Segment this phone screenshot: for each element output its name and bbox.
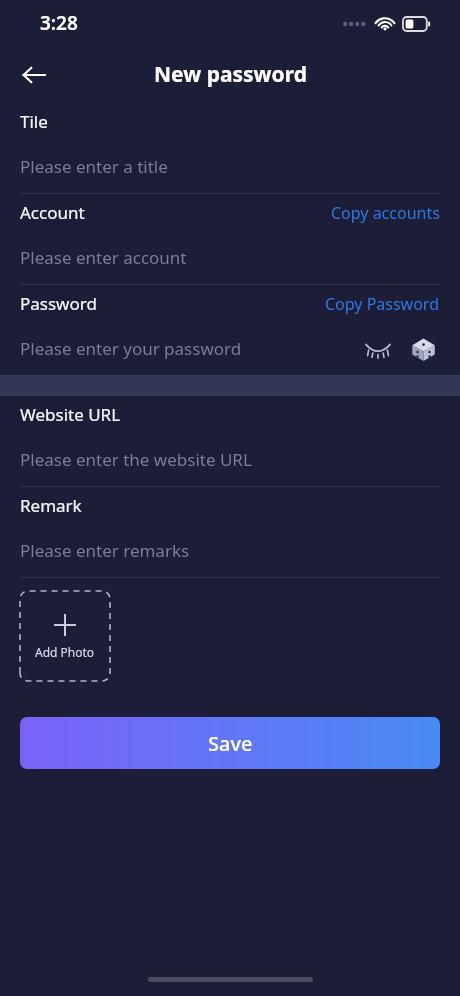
staticText: Copy accounts <box>331 202 440 224</box>
staticText: Please enter a title <box>20 155 168 178</box>
staticText: Tile <box>20 110 48 133</box>
staticText: Please enter your password <box>20 337 242 360</box>
button[interactable]: Copy accounts <box>331 202 440 224</box>
button[interactable]: Show password <box>361 332 395 366</box>
button[interactable]: Save <box>20 717 440 769</box>
staticText: Remark <box>20 494 82 517</box>
button[interactable]: Please enter remarks <box>20 524 440 577</box>
button[interactable]: Back <box>10 51 58 99</box>
button[interactable]: Add Photo <box>20 591 110 681</box>
staticText: Please enter the website URL <box>20 448 252 471</box>
button[interactable]: Generate random password <box>406 332 440 366</box>
button[interactable]: Copy Password <box>325 293 440 315</box>
staticText: Please enter remarks <box>20 539 190 562</box>
button[interactable]: Please enter your password <box>20 322 440 375</box>
staticText: 3:28 <box>40 10 78 36</box>
button[interactable]: Please enter account <box>20 231 440 284</box>
staticText: Copy Password <box>325 293 440 315</box>
button[interactable]: Please enter a title <box>20 140 440 193</box>
staticText: Add Photo <box>35 644 95 660</box>
staticText: Save <box>208 730 253 757</box>
button[interactable]: Please enter the website URL <box>20 433 440 486</box>
staticText: Please enter account <box>20 246 187 269</box>
staticText: Account <box>20 201 85 224</box>
staticText: New password <box>154 60 307 89</box>
staticText: Password <box>20 292 97 315</box>
staticText: Website URL <box>20 403 121 426</box>
